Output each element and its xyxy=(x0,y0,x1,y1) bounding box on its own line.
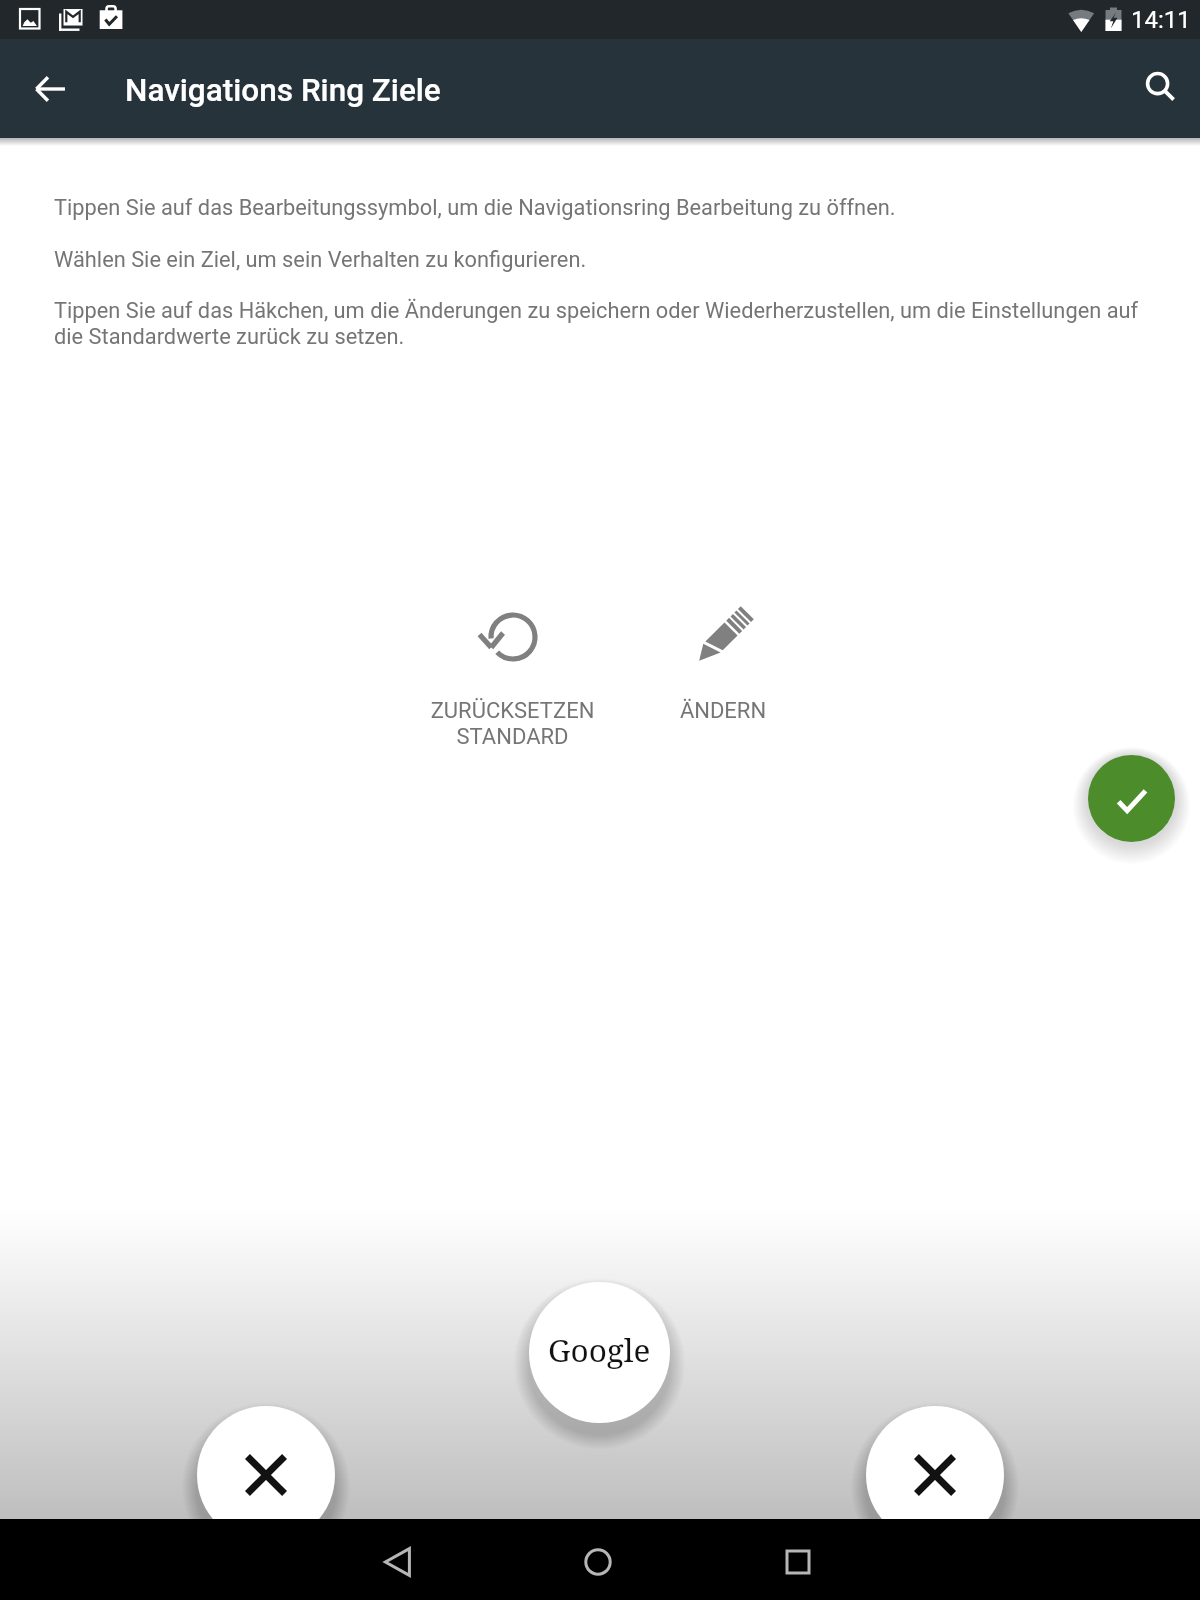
button[interactable]: ZURÜCKSETZEN STANDARD xyxy=(415,596,610,756)
button[interactable]: Google-Suche xyxy=(529,1282,670,1423)
staticText: Tippen Sie auf das Häkchen, um die Änder… xyxy=(54,298,1164,350)
button[interactable]: Ziel leer xyxy=(866,1406,1004,1544)
staticText: 14:11 xyxy=(1131,6,1191,34)
button[interactable]: Übersicht xyxy=(738,1532,858,1592)
button[interactable]: Ziel leer xyxy=(197,1406,335,1544)
button[interactable]: Speichern xyxy=(1088,755,1175,842)
staticText: Google xyxy=(548,1328,651,1371)
button[interactable]: Zurück xyxy=(338,1532,458,1592)
button[interactable]: ÄNDERN xyxy=(645,596,801,756)
button[interactable]: Suchen xyxy=(1129,56,1193,120)
staticText: ÄNDERN xyxy=(645,698,801,724)
button[interactable]: Startbildschirm xyxy=(538,1532,658,1592)
staticText: Navigations Ring Ziele xyxy=(125,72,441,109)
button[interactable]: Zurück xyxy=(18,57,82,121)
staticText: ZURÜCKSETZEN STANDARD xyxy=(415,698,610,750)
staticText: Tippen Sie auf das Bearbeitungssymbol, u… xyxy=(54,195,1154,221)
staticText: Wählen Sie ein Ziel, um sein Verhalten z… xyxy=(54,247,1154,273)
